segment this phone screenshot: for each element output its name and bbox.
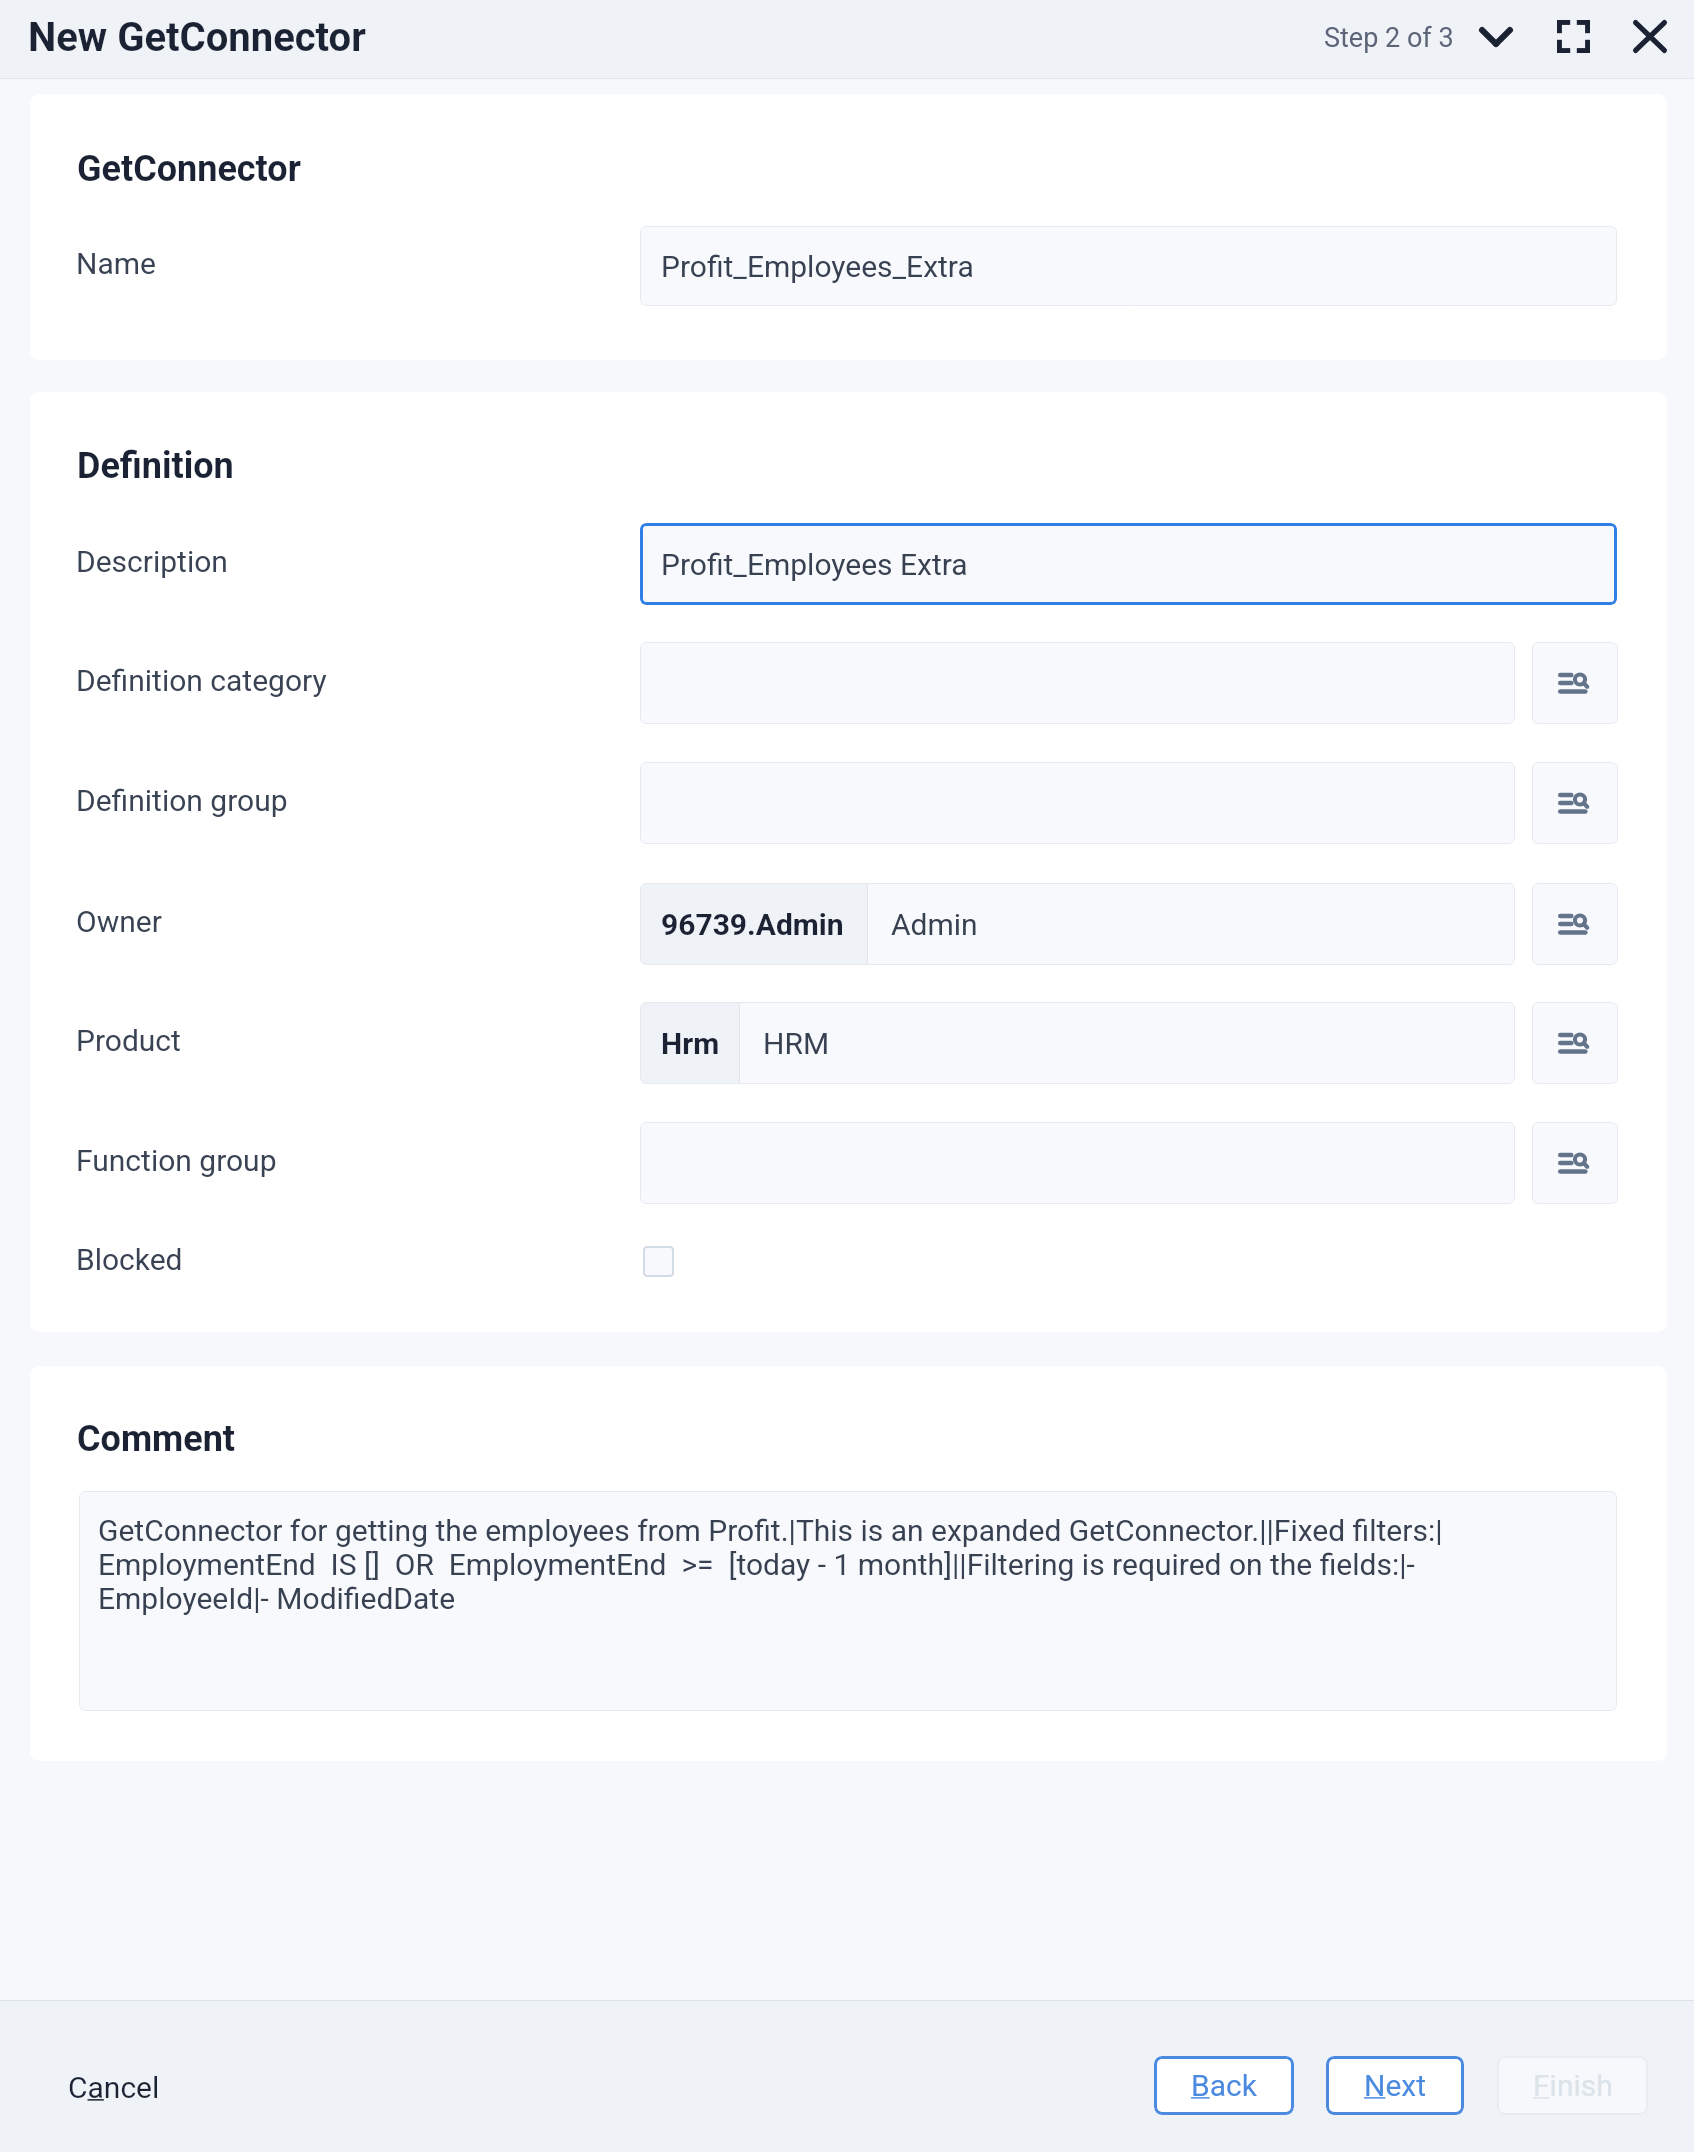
- button[interactable]: 96739.Admin: [640, 883, 1515, 965]
- button[interactable]: Close: [1621, 7, 1679, 65]
- button[interactable]: Browse: [1532, 883, 1618, 965]
- button[interactable]: Browse: [1532, 642, 1618, 724]
- staticText: Cancel: [68, 2070, 160, 2105]
- button[interactable]: Browse: [1532, 762, 1618, 844]
- staticText: Back: [1191, 2068, 1257, 2103]
- button[interactable]: Browse: [1532, 1122, 1618, 1204]
- staticText: Admin: [891, 907, 978, 942]
- staticText: Product: [76, 1023, 181, 1058]
- staticText: GetConnector for getting the employees f…: [98, 1513, 1498, 1616]
- button[interactable]: Back: [1154, 2056, 1294, 2115]
- staticText: Definition: [77, 445, 234, 487]
- button[interactable]: GetConnector for getting the employees f…: [79, 1491, 1617, 1711]
- staticText: Function group: [76, 1143, 277, 1178]
- staticText: Name: [76, 246, 156, 281]
- button[interactable]: Cancel: [62, 2064, 166, 2111]
- staticText: Definition category: [76, 663, 327, 698]
- staticText: GetConnector: [77, 148, 301, 190]
- staticText: Comment: [77, 1418, 236, 1460]
- button[interactable]: Profit_Employees Extra: [640, 523, 1617, 605]
- staticText: Blocked: [76, 1242, 183, 1277]
- staticText: Finish: [1533, 2068, 1613, 2103]
- staticText: Description: [76, 544, 228, 579]
- button[interactable]: Finish: [1497, 2056, 1648, 2115]
- staticText: Profit_Employees Extra: [661, 547, 968, 582]
- button[interactable]: Blocked: [643, 1246, 674, 1277]
- button[interactable]: Next: [1326, 2056, 1464, 2115]
- staticText: Profit_Employees_Extra: [661, 249, 974, 284]
- staticText: Step 2 of 3: [1324, 22, 1454, 54]
- staticText: Next: [1364, 2068, 1427, 2103]
- button[interactable]: Browse: [1532, 1002, 1618, 1084]
- button[interactable]: Profit_Employees_Extra: [640, 226, 1617, 306]
- button[interactable]: Maximize: [1544, 7, 1602, 65]
- staticText: Owner: [76, 904, 162, 939]
- button[interactable]: Collapse: [1467, 8, 1525, 66]
- staticText: New GetConnector: [28, 14, 366, 61]
- staticText: HRM: [763, 1026, 830, 1061]
- button[interactable]: Hrm: [640, 1002, 1515, 1084]
- staticText: 96739.Admin: [661, 907, 844, 942]
- staticText: Definition group: [76, 783, 288, 818]
- staticText: Hrm: [661, 1026, 720, 1061]
